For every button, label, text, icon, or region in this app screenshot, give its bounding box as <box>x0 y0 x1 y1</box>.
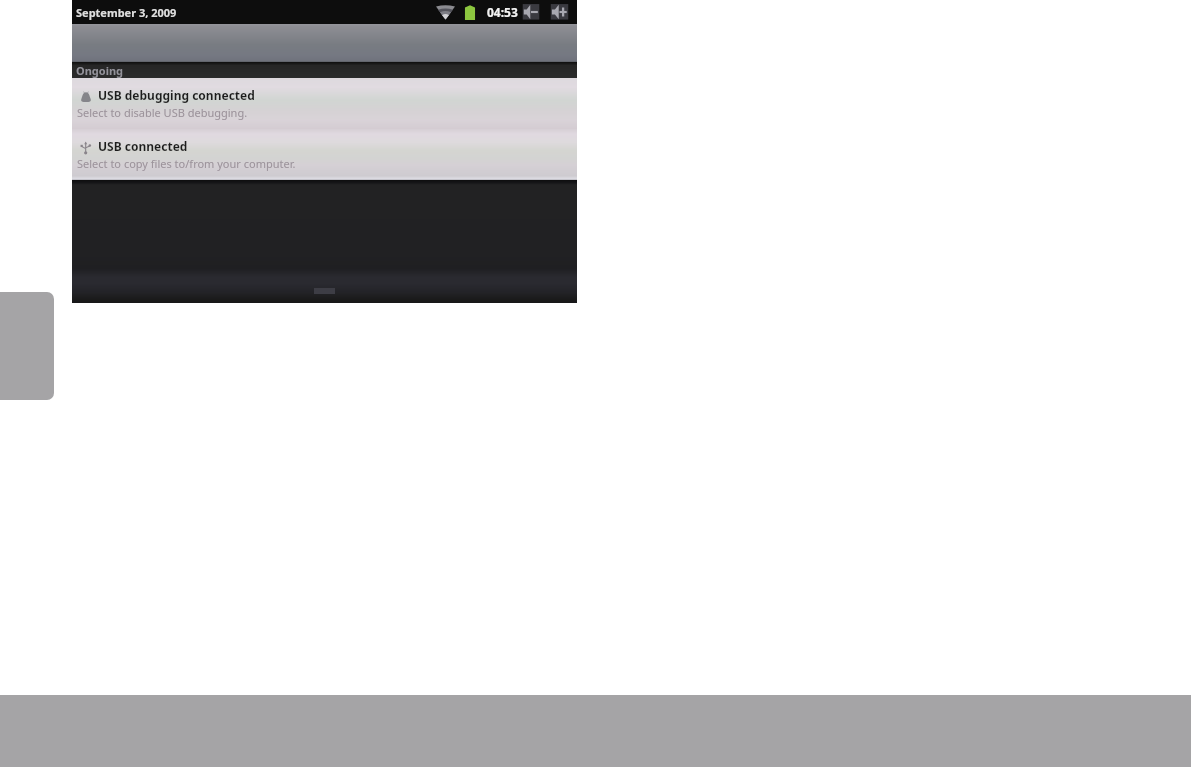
other: Wi-Fi signal <box>436 3 455 21</box>
staticText: Ongoing <box>76 63 124 78</box>
staticText: Select to disable USB debugging. <box>77 105 248 120</box>
staticText: Select to copy files to/from your comput… <box>77 156 296 171</box>
staticText: September 3, 2009 <box>76 5 177 20</box>
button[interactable]: Volume down <box>522 3 540 21</box>
staticText: 04:53 <box>487 4 518 20</box>
other: Battery <box>464 3 476 21</box>
button[interactable]: USB connected <box>72 129 577 180</box>
button[interactable]: USB debugging connected <box>72 78 577 129</box>
button[interactable]: Volume up <box>550 3 569 21</box>
staticText: USB debugging connected <box>98 87 255 103</box>
staticText: USB connected <box>98 138 188 154</box>
